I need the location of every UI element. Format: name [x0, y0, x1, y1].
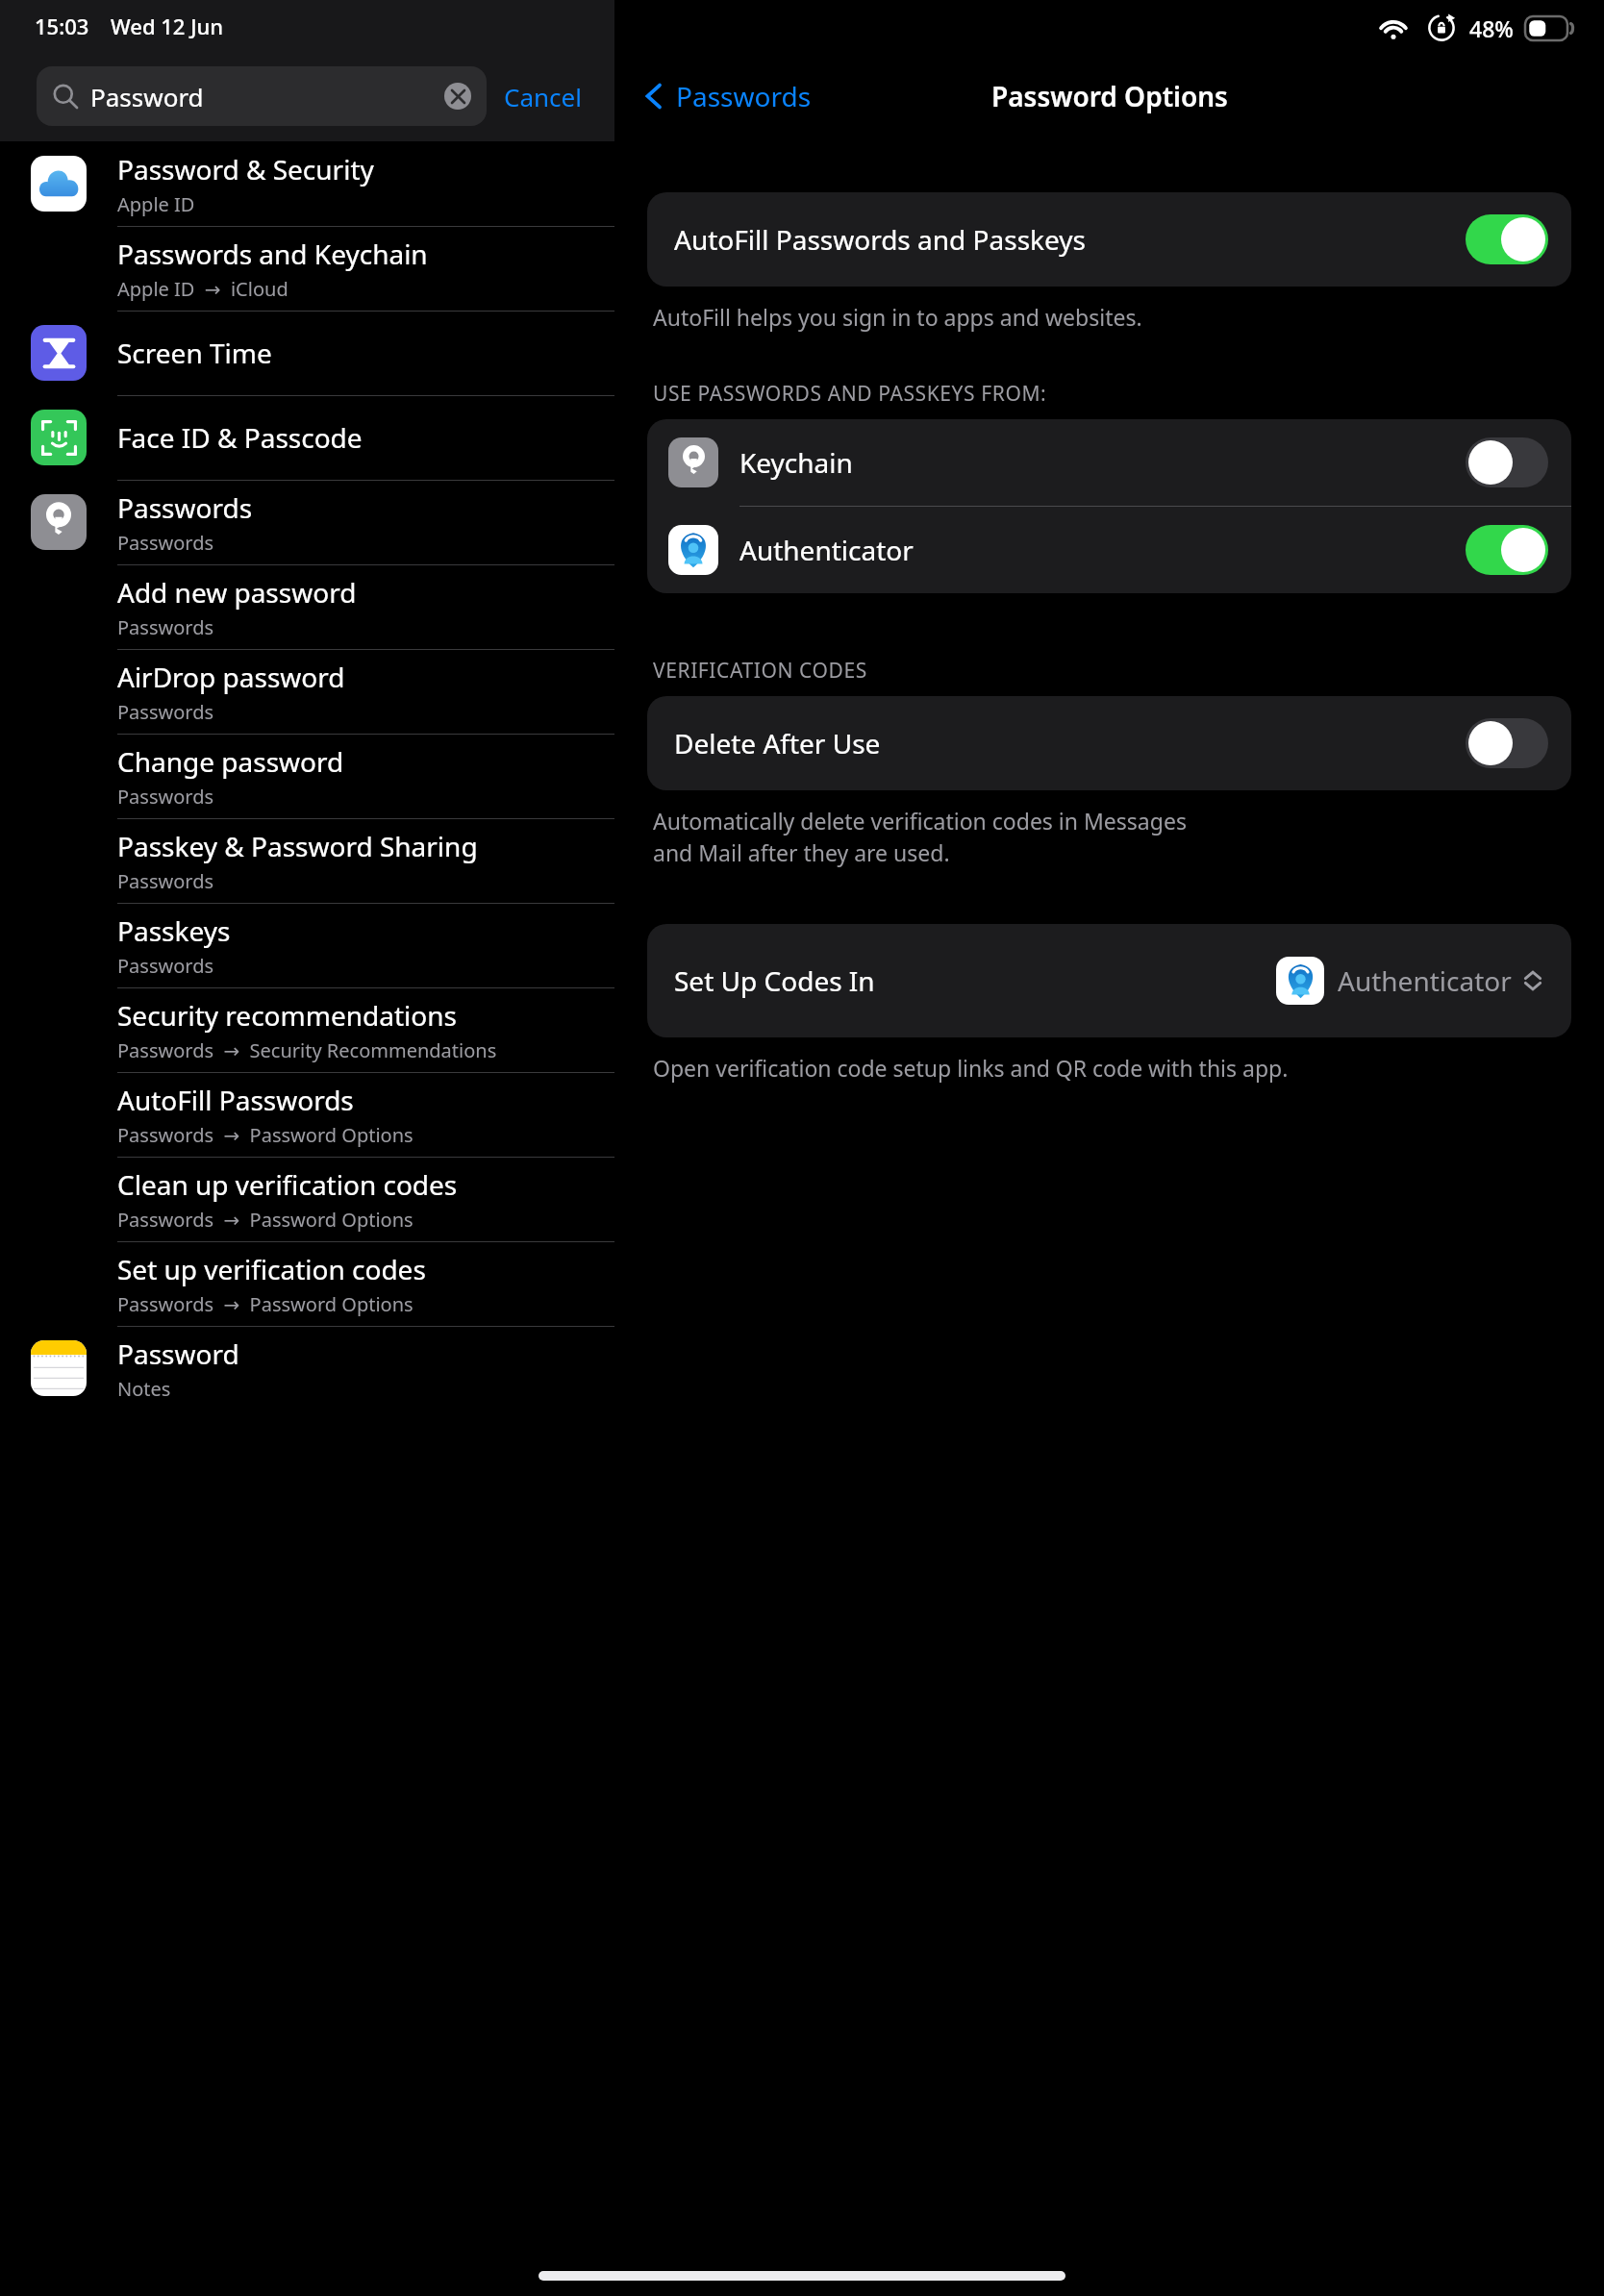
button[interactable]: AutoFill Passwords and Passkeys — [647, 192, 1571, 287]
staticText: AutoFill Passwords — [117, 1082, 354, 1118]
button[interactable]: Change password — [0, 734, 614, 818]
staticText: Password Options — [991, 78, 1228, 114]
button[interactable]: Authenticator — [647, 507, 1571, 593]
button[interactable]: AutoFill Passwords — [0, 1072, 614, 1157]
staticText: Apple ID → iCloud — [117, 276, 288, 302]
staticText: Passwords — [117, 868, 214, 894]
button[interactable]: Security recommendations — [0, 987, 614, 1072]
staticText: USE PASSWORDS AND PASSKEYS FROM: — [653, 380, 1047, 408]
button[interactable]: Face ID & Passcode — [0, 395, 614, 480]
staticText: Passwords — [117, 489, 253, 526]
staticText: Clean up verification codes — [117, 1166, 458, 1203]
staticText: Wed 12 Jun — [111, 12, 224, 40]
staticText: Passwords → Password Options — [117, 1207, 414, 1233]
staticText: Passwords — [117, 784, 214, 810]
staticText: 48% — [1469, 13, 1514, 43]
staticText: Notes — [117, 1376, 171, 1402]
staticText: Passkey & Password Sharing — [117, 828, 478, 864]
staticText: Passwords — [117, 614, 214, 640]
staticText: Set Up Codes In — [674, 962, 875, 999]
staticText: Password — [117, 1335, 239, 1372]
staticText: Passkeys — [117, 912, 231, 949]
staticText: Authenticator — [1338, 962, 1512, 999]
staticText: Keychain — [739, 444, 853, 481]
staticText: Authenticator — [739, 532, 914, 568]
button[interactable]: Password — [37, 66, 487, 126]
staticText: Set up verification codes — [117, 1251, 426, 1287]
staticText: Passwords → Password Options — [117, 1122, 414, 1148]
staticText: Security recommendations — [117, 997, 457, 1034]
button[interactable]: Toggle on — [1466, 214, 1548, 264]
staticText: Passwords → Security Recommendations — [117, 1037, 497, 1063]
staticText: Passwords and Keychain — [117, 236, 428, 272]
staticText: Apple ID — [117, 191, 195, 217]
button[interactable]: Add new password — [0, 564, 614, 649]
button[interactable]: Keychain — [647, 419, 1571, 506]
button[interactable]: Passwords and Keychain — [0, 226, 614, 311]
staticText: Passwords — [676, 78, 812, 114]
staticText: Passwords → Password Options — [117, 1291, 414, 1317]
staticText: VERIFICATION CODES — [653, 657, 867, 685]
staticText: Add new password — [117, 574, 357, 611]
button[interactable]: Toggle off — [1466, 437, 1548, 487]
button[interactable]: Delete After Use — [647, 696, 1571, 790]
button[interactable]: Password — [0, 1326, 614, 1410]
staticText: 15:03 — [35, 12, 89, 40]
staticText: Cancel — [504, 80, 582, 113]
staticText: AirDrop password — [117, 659, 345, 695]
button[interactable]: Cancel — [487, 70, 599, 123]
button[interactable]: AirDrop password — [0, 649, 614, 734]
button[interactable]: Set up verification codes — [0, 1241, 614, 1326]
button[interactable]: Password & Security — [0, 141, 614, 226]
staticText: AutoFill helps you sign in to apps and w… — [653, 302, 1142, 332]
staticText: Passwords — [117, 530, 214, 556]
button[interactable]: Toggle off — [1466, 718, 1548, 768]
button[interactable]: Passwords — [0, 480, 614, 564]
staticText: Passwords — [117, 699, 214, 725]
button[interactable]: Passwords — [630, 68, 821, 124]
staticText: Password & Security — [117, 151, 374, 187]
staticText: Automatically delete verification codes … — [653, 806, 1232, 868]
staticText: Open verification code setup links and Q… — [653, 1053, 1289, 1083]
button[interactable]: Clear search — [444, 83, 471, 110]
staticText: AutoFill Passwords and Passkeys — [674, 221, 1086, 258]
button[interactable]: Passkeys — [0, 903, 614, 987]
button[interactable]: Toggle on — [1466, 525, 1548, 575]
staticText: Face ID & Passcode — [117, 419, 363, 456]
button[interactable]: Screen Time — [0, 311, 614, 395]
staticText: Password — [90, 80, 444, 113]
button[interactable]: Passkey & Password Sharing — [0, 818, 614, 903]
staticText: Passwords — [117, 953, 214, 979]
staticText: Delete After Use — [674, 725, 881, 761]
staticText: Change password — [117, 743, 344, 780]
button[interactable]: Set Up Codes In — [647, 924, 1571, 1037]
staticText: Screen Time — [117, 335, 272, 371]
button[interactable]: Clean up verification codes — [0, 1157, 614, 1241]
